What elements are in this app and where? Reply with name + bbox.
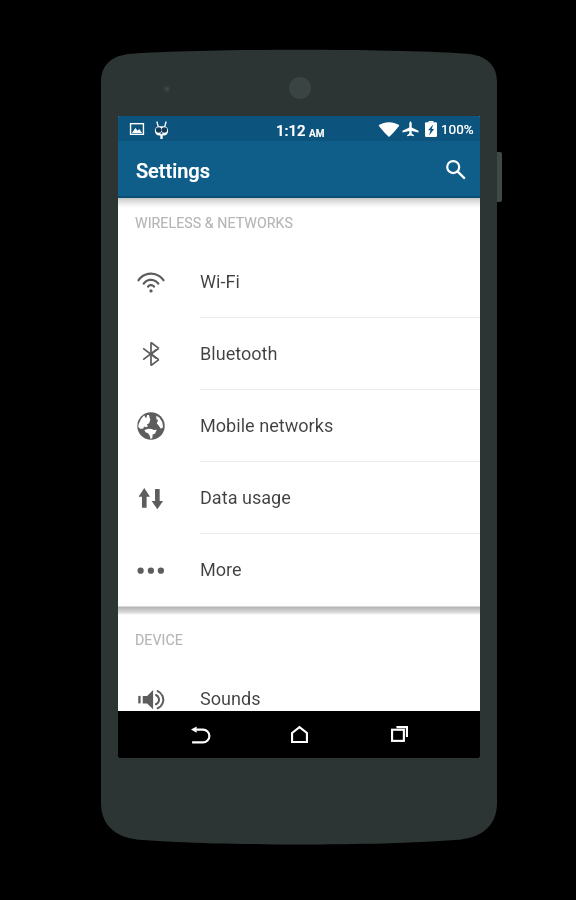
button[interactable]: Wi-Fi [118,246,480,318]
staticText: 100% [441,121,474,137]
button[interactable]: Back [159,711,239,758]
staticText: Data usage [200,487,291,508]
button[interactable]: Home [259,711,339,758]
staticText: Wi-Fi [200,271,240,292]
button[interactable]: Sounds [118,663,480,735]
button[interactable]: Bluetooth [118,318,480,390]
staticText: More [200,559,242,580]
staticText: Settings [136,159,211,182]
button[interactable]: Search [437,151,473,187]
staticText: 1:12 [276,122,306,140]
staticText: WIRELESS & NETWORKS [135,215,293,232]
staticText: Sounds [200,688,261,709]
staticText: DEVICE [135,632,183,649]
button[interactable]: Recent apps [359,711,439,758]
staticText: AM [309,128,325,140]
staticText: Mobile networks [200,415,334,436]
button[interactable]: Mobile networks [118,390,480,462]
button[interactable]: Data usage [118,462,480,534]
staticText: Bluetooth [200,343,278,364]
button[interactable]: More [118,534,480,606]
